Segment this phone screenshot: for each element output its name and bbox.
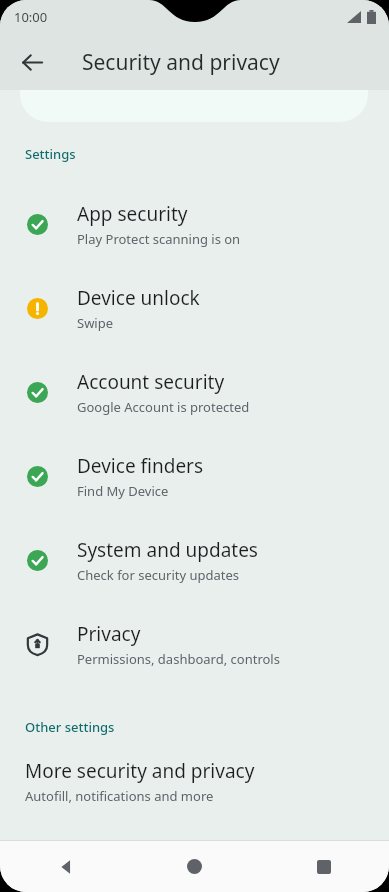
button[interactable]: Privacy	[0, 602, 389, 686]
button[interactable]: Account security	[0, 350, 389, 434]
button[interactable]: More security and privacy	[0, 758, 389, 805]
button[interactable]: Back	[0, 841, 129, 892]
button[interactable]: Home	[129, 841, 259, 892]
button[interactable]: Recent apps	[259, 841, 389, 892]
button[interactable]: System and updates	[0, 518, 389, 602]
staticText: Account security	[77, 369, 225, 395]
staticText: Device finders	[77, 453, 204, 479]
staticText: Device unlock	[77, 285, 200, 311]
staticText: Permissions, dashboard, controls	[77, 650, 280, 668]
staticText: App security	[77, 201, 188, 227]
button[interactable]: App security	[0, 182, 389, 266]
staticText: System and updates	[77, 537, 258, 563]
button[interactable]: Device finders	[0, 434, 389, 518]
staticText: Google Account is protected	[77, 398, 250, 416]
staticText: Settings	[25, 145, 76, 163]
staticText: Other settings	[25, 718, 115, 736]
staticText: Privacy	[77, 621, 141, 647]
staticText: Autofill, notifications and more	[25, 787, 214, 805]
button[interactable]: Back	[8, 38, 56, 86]
staticText: 10:00	[14, 8, 48, 26]
staticText: More security and privacy	[25, 758, 255, 784]
staticText: Security and privacy	[82, 48, 280, 77]
staticText: Check for security updates	[77, 566, 240, 584]
staticText: Find My Device	[77, 482, 169, 500]
button[interactable]: Device unlock	[0, 266, 389, 350]
staticText: Play Protect scanning is on	[77, 230, 241, 248]
staticText: Swipe	[77, 314, 114, 332]
